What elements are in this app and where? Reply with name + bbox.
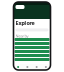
button[interactable] (14, 58, 49, 61)
button[interactable]: Tab 4 (41, 64, 50, 70)
button[interactable]: Tab 2 (23, 64, 32, 70)
button[interactable] (14, 54, 49, 57)
staticText: Nearby (15, 33, 28, 39)
button[interactable]: Tab 1 (13, 64, 23, 70)
button[interactable] (14, 42, 49, 45)
button[interactable]: Tab 3 (32, 64, 41, 70)
button[interactable] (14, 46, 49, 49)
button[interactable] (14, 50, 49, 53)
button[interactable] (14, 38, 49, 41)
staticText: Explore (15, 19, 34, 26)
